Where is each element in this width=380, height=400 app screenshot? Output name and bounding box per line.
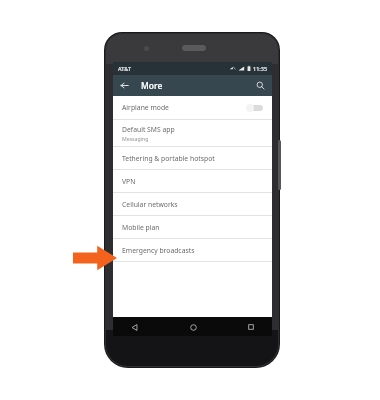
button[interactable]: Back xyxy=(116,77,133,94)
button[interactable]: Search xyxy=(252,77,269,94)
button[interactable]: Emergency broadcasts xyxy=(113,239,272,261)
staticText: Default SMS app xyxy=(122,125,175,134)
staticText: AT&T xyxy=(118,65,132,72)
staticText: Airplane mode xyxy=(122,103,169,112)
staticText: Mobile plan xyxy=(122,223,160,232)
button[interactable]: Cellular networks xyxy=(113,193,272,215)
button[interactable]: Mobile plan xyxy=(113,216,272,238)
staticText: Messaging xyxy=(122,135,149,142)
button[interactable]: Recent apps xyxy=(244,320,258,334)
staticText: Emergency broadcasts xyxy=(122,246,195,255)
button[interactable]: VPN xyxy=(113,170,272,192)
button[interactable]: Back xyxy=(127,320,141,334)
staticText: Tethering & portable hotspot xyxy=(122,154,215,163)
staticText: More xyxy=(141,80,163,92)
button[interactable]: Airplane mode xyxy=(113,96,272,119)
staticText: VPN xyxy=(122,177,136,186)
button[interactable]: Default SMS app xyxy=(113,120,272,146)
button[interactable]: Home xyxy=(186,320,200,334)
staticText: Cellular networks xyxy=(122,200,178,209)
button[interactable]: Tethering & portable hotspot xyxy=(113,147,272,169)
staticText: 11:35 xyxy=(253,65,268,72)
